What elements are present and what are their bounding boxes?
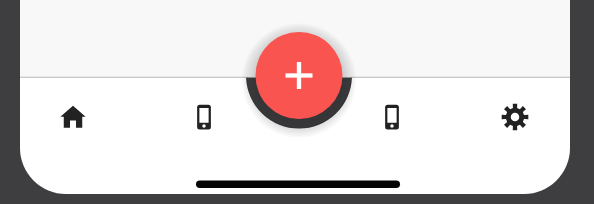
button[interactable]: Devices (174, 87, 234, 147)
button[interactable]: Add (256, 32, 343, 119)
button[interactable]: Settings (485, 87, 545, 147)
button[interactable]: Home (43, 87, 103, 147)
button[interactable]: Phone (362, 87, 422, 147)
